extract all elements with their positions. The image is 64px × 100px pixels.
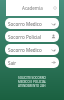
staticText: Academia: [22, 5, 43, 11]
button[interactable]: Socorro Policial: [5, 31, 59, 42]
other: Medical help: [51, 21, 56, 26]
staticText: Socorro Medico: [8, 47, 42, 53]
staticText: MEDICO E POLICIAL: [18, 80, 47, 84]
button[interactable]: Socorro Medico: [5, 44, 59, 55]
other: Exit: [51, 60, 56, 65]
staticText: Socorro Medico: [8, 21, 42, 27]
other: Medical help: [51, 47, 56, 52]
staticText: ATENDIMENTO 24H: [18, 84, 46, 88]
staticText: SOLICITE SOCORRO: [18, 76, 46, 80]
button[interactable]: Sair: [5, 57, 59, 68]
other: Police help: [51, 34, 56, 39]
staticText: Sair: [8, 60, 17, 66]
staticText: Socorro Policial: [8, 34, 42, 40]
button[interactable]: Socorro Medico: [5, 18, 59, 29]
other: More options: [53, 6, 57, 10]
